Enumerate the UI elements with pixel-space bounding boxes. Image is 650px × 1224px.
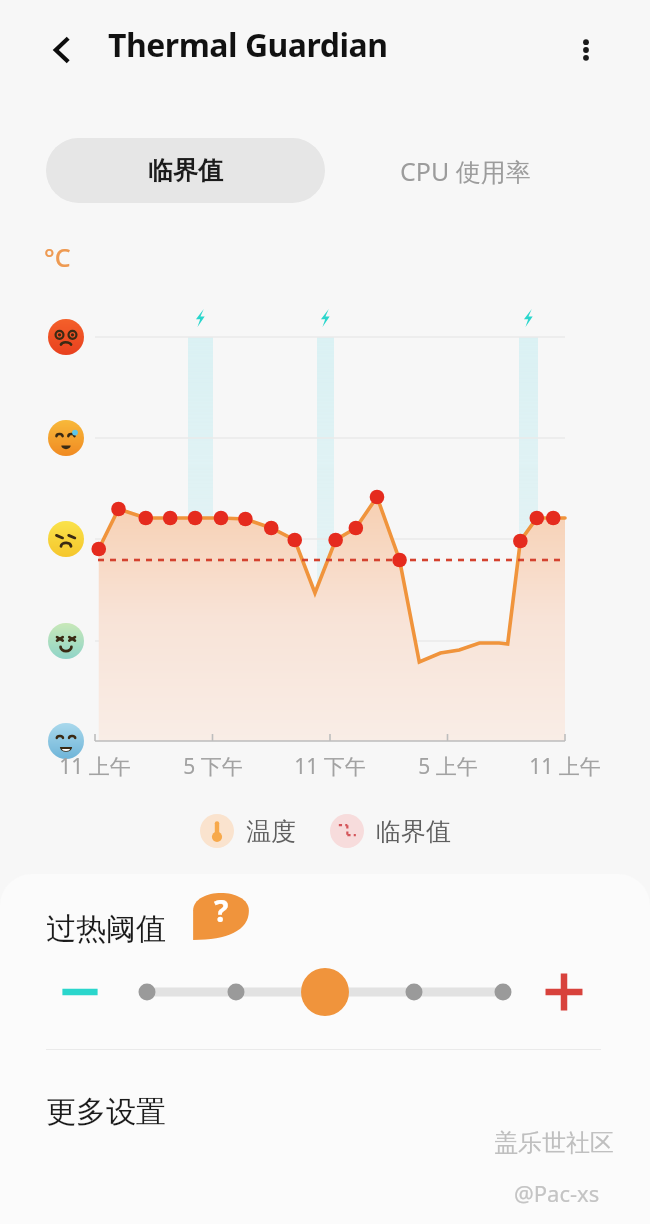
button[interactable]: Increase bbox=[534, 962, 594, 1022]
staticText: 温度 bbox=[246, 816, 296, 847]
staticText: 11 上午 bbox=[59, 752, 131, 781]
button[interactable]: 温度 bbox=[200, 814, 296, 848]
button[interactable]: 更多设置 bbox=[0, 1069, 650, 1154]
staticText: 盖乐世社区 bbox=[494, 1128, 614, 1158]
staticText: 临界值 bbox=[148, 155, 223, 186]
staticText: 11 上午 bbox=[529, 752, 601, 781]
staticText: CPU 使用率 bbox=[400, 154, 531, 188]
button[interactable] bbox=[125, 952, 525, 1032]
staticText: Thermal Guardian bbox=[108, 23, 388, 67]
staticText: @Pac-xs bbox=[514, 1178, 600, 1208]
button[interactable]: Help bbox=[190, 881, 252, 943]
staticText: ? bbox=[214, 890, 229, 931]
button[interactable]: 过热阈值 bbox=[46, 901, 166, 957]
staticText: 过热阈值 bbox=[46, 910, 166, 948]
staticText: 5 上午 bbox=[418, 752, 478, 781]
button[interactable]: Decrease bbox=[50, 962, 110, 1022]
staticText: °C bbox=[44, 240, 71, 274]
button[interactable]: More options bbox=[558, 22, 614, 78]
button[interactable]: 临界值 bbox=[330, 814, 451, 848]
button[interactable]: CPU 使用率 bbox=[345, 138, 585, 203]
staticText: 更多设置 bbox=[46, 1093, 166, 1131]
button[interactable]: Back bbox=[34, 22, 90, 78]
staticText: 临界值 bbox=[376, 816, 451, 847]
staticText: 11 下午 bbox=[294, 752, 366, 781]
staticText: 5 下午 bbox=[183, 752, 243, 781]
button[interactable]: 临界值 bbox=[46, 138, 325, 203]
